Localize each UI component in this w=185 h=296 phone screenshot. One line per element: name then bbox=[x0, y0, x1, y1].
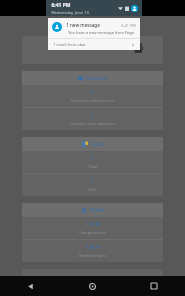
button[interactable]: Account bbox=[131, 5, 138, 12]
button[interactable]: Recommended Contacts bbox=[22, 36, 163, 64]
button[interactable]: 100 % bbox=[22, 240, 163, 262]
button[interactable]: Profile bbox=[22, 203, 163, 217]
staticText: your hobbies/now bbox=[29, 283, 64, 288]
button[interactable]: 3 bbox=[22, 85, 163, 107]
staticText: Favorites added by me bbox=[71, 98, 114, 103]
staticText: Network Stats bbox=[79, 253, 106, 258]
button[interactable]: Your preferences helps restore 3 people … bbox=[22, 269, 163, 296]
staticText: 1 bbox=[91, 112, 94, 119]
staticText: Completeness bbox=[79, 230, 106, 235]
button[interactable]: Favourites bbox=[22, 71, 163, 130]
button[interactable]: 6:41 PM bbox=[46, 0, 142, 16]
button[interactable]: Home bbox=[61, 276, 123, 296]
staticText: 1 email from ubar bbox=[53, 42, 86, 47]
button[interactable]: Print bbox=[131, 41, 145, 55]
staticText: 6:41 PM bbox=[121, 23, 136, 28]
button[interactable]: Goals bbox=[22, 137, 163, 151]
staticText: Profile bbox=[90, 207, 104, 213]
staticText: 1 bbox=[91, 155, 94, 162]
staticText: Goals bbox=[91, 141, 103, 147]
staticText: You have a new message from Yoga Vachasp… bbox=[66, 30, 136, 35]
button[interactable]: Profile bbox=[22, 203, 163, 262]
staticText: 6:41 PM bbox=[51, 2, 71, 9]
staticText: 100 % bbox=[86, 221, 100, 228]
staticText: 100 % bbox=[86, 244, 100, 251]
staticText: 3 bbox=[91, 89, 94, 96]
staticText: 1 bbox=[91, 178, 94, 185]
button[interactable]: 1 email from ubar bbox=[48, 39, 140, 50]
staticText: Recommended Contacts bbox=[68, 44, 117, 50]
staticText: Total bbox=[88, 164, 98, 169]
button[interactable]: Favourites bbox=[22, 71, 163, 85]
button[interactable]: Goals bbox=[22, 137, 163, 196]
staticText: Favorites who added me bbox=[69, 121, 116, 126]
button[interactable]: 100 % bbox=[22, 217, 163, 239]
staticText: Sent bbox=[88, 187, 97, 192]
staticText: Favourites bbox=[86, 75, 108, 81]
staticText: Wednesday, June 13 bbox=[51, 10, 89, 15]
button[interactable]: Back bbox=[0, 276, 61, 296]
button[interactable]: Recents bbox=[123, 276, 185, 296]
staticText: 1 new message bbox=[66, 22, 100, 28]
button[interactable]: 1 bbox=[22, 108, 163, 130]
button[interactable]: 1 new message bbox=[48, 18, 140, 50]
